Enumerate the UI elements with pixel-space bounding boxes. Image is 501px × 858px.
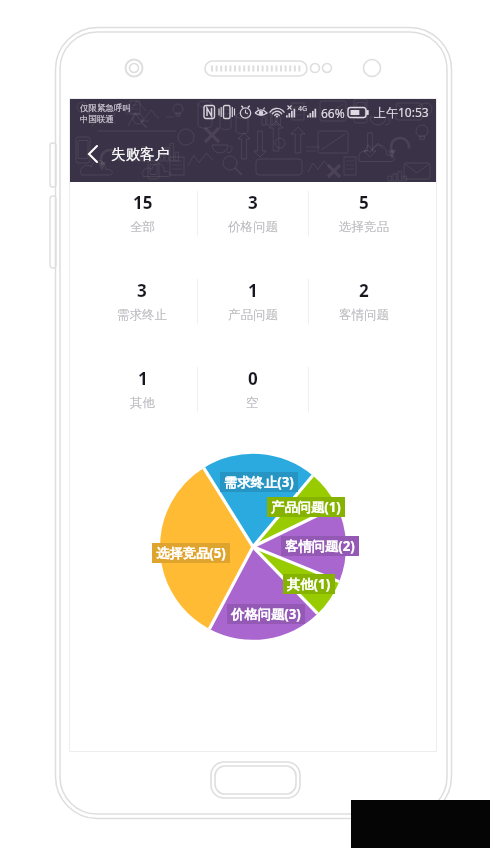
- staticText: 1: [248, 279, 258, 302]
- staticText: 15: [133, 191, 153, 214]
- staticText: 仅限紧急呼叫: [80, 103, 131, 114]
- staticText: 其他: [130, 395, 155, 411]
- staticText: 空: [246, 395, 259, 411]
- staticText: 全部: [130, 219, 155, 235]
- staticText: 3: [137, 279, 147, 302]
- staticText: 失败客户: [111, 145, 169, 163]
- button[interactable]: 3: [87, 270, 197, 358]
- staticText: 选择竞品: [339, 219, 389, 235]
- staticText: 产品问题(1): [271, 498, 341, 516]
- staticText: 0: [248, 367, 258, 390]
- button[interactable]: 5: [308, 182, 419, 270]
- staticText: 价格问题: [228, 219, 278, 235]
- button[interactable]: 1: [197, 270, 308, 358]
- staticText: 2: [359, 279, 369, 302]
- staticText: 价格问题(3): [231, 605, 301, 623]
- staticText: 1: [138, 367, 148, 390]
- staticText: 中国联通: [80, 114, 114, 125]
- button[interactable]: 2: [308, 270, 419, 358]
- staticText: 上午10:53: [374, 104, 429, 120]
- button[interactable]: 15: [87, 182, 197, 270]
- button[interactable]: 1: [87, 358, 197, 446]
- staticText: 需求终止: [117, 307, 167, 323]
- button[interactable]: 3: [197, 182, 308, 270]
- staticText: 客情问题: [339, 307, 389, 323]
- staticText: 4G: [298, 104, 308, 114]
- staticText: 5: [359, 191, 369, 214]
- staticText: 3: [248, 191, 258, 214]
- staticText: 其他(1): [287, 575, 331, 593]
- staticText: 客情问题(2): [285, 537, 355, 555]
- staticText: 需求终止(3): [224, 473, 294, 491]
- staticText: 66%: [321, 105, 345, 121]
- button[interactable]: 0: [197, 358, 308, 446]
- staticText: 选择竞品(5): [156, 544, 226, 562]
- button[interactable]: Back: [70, 125, 111, 182]
- staticText: 产品问题: [228, 307, 278, 323]
